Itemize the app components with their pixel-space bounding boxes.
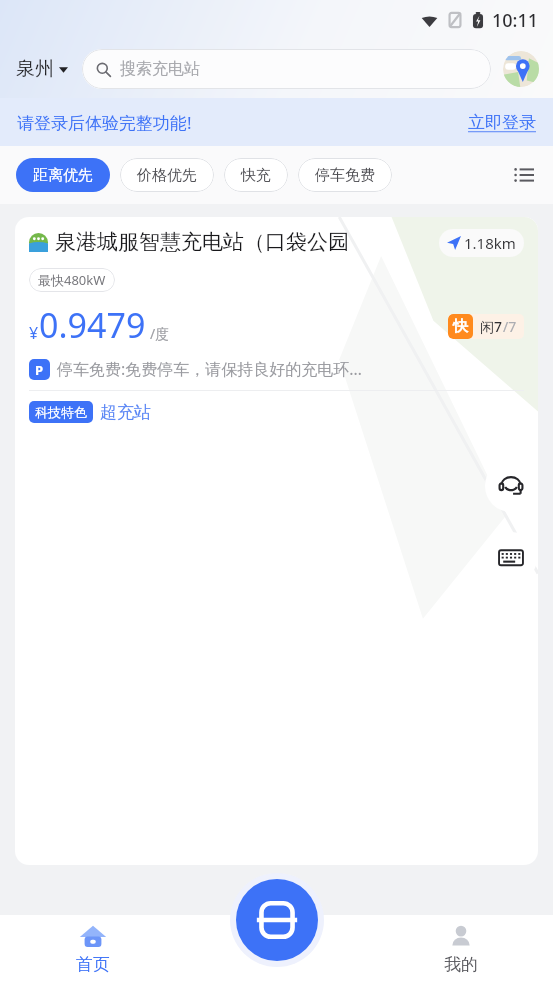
staticText: 泉港城服智慧充电站（口袋公园 [55,229,349,255]
button[interactable]: List options [509,160,539,190]
staticText: 搜索充电站 [120,59,200,79]
button[interactable]: Keyboard input [485,532,537,584]
staticText: 科技特色 [35,404,87,420]
staticText: 10:11 [492,8,539,33]
staticText: 最快480kW [38,271,106,289]
button[interactable]: 请登录后体验完整功能! [0,98,553,146]
staticText: P [35,361,44,379]
button[interactable]: 泉州 [16,51,68,87]
staticText: 0.9479 [39,302,146,348]
staticText: 立即登录 [468,112,536,133]
staticText: 停车免费 [315,166,375,185]
button[interactable]: Map view [503,51,539,87]
staticText: 闲7 [480,317,503,336]
staticText: 泉州 [16,57,54,81]
staticText: 请登录后体验完整功能! [17,111,192,134]
staticText: 快 [453,317,468,336]
button[interactable]: 我的 [369,915,553,983]
staticText: 1.18km [464,233,516,253]
staticText: 价格优先 [137,166,197,185]
staticText: /度 [150,324,170,343]
button[interactable]: Customer service [485,460,537,512]
button[interactable]: 距离优先 [16,158,110,192]
button[interactable]: 价格优先 [120,158,214,192]
button[interactable]: 搜索充电站 [82,49,491,89]
staticText: 首页 [76,954,110,975]
staticText: 快充 [241,166,271,185]
staticText: 超充站 [100,402,151,423]
staticText: 停车免费:免费停车，请保持良好的充电环… [57,358,362,380]
staticText: /7 [503,317,517,336]
button[interactable]: Scan to charge [236,879,318,961]
staticText: 距离优先 [33,166,93,185]
button[interactable]: 停车免费 [298,158,392,192]
staticText: 我的 [444,954,478,975]
button[interactable]: 首页 [0,915,185,983]
staticText: ¥ [29,322,39,344]
button[interactable]: 快充 [224,158,288,192]
button[interactable]: 泉港城服智慧充电站（口袋公园 [15,217,538,865]
